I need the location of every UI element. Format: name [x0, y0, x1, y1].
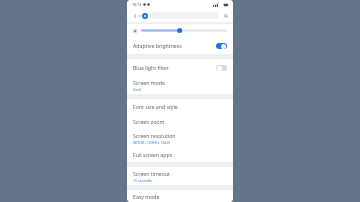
button[interactable]: Display settings — [142, 13, 148, 19]
staticText: WQHD+ (3088 x 1440) — [133, 140, 170, 145]
staticText: 10:13 — [132, 2, 142, 7]
button[interactable]: Brightness — [141, 27, 227, 34]
button[interactable]: Screen timeout — [127, 167, 233, 185]
staticText: Vivid — [133, 87, 142, 92]
button[interactable]: Adaptive brightness — [127, 37, 233, 54]
button[interactable]: Font size and style — [127, 99, 233, 114]
staticText: Screen timeout — [133, 170, 170, 177]
button[interactable]: Back — [131, 12, 138, 19]
button[interactable]: Search — [222, 12, 229, 19]
button[interactable]: Screen resolution — [127, 129, 233, 147]
staticText: Blue light filter — [133, 64, 213, 71]
button[interactable]: Blue light filter — [216, 65, 227, 71]
staticText: Screen mode — [133, 79, 165, 86]
staticText: Screen resolution — [133, 132, 176, 139]
staticText: Adaptive brightness — [133, 42, 213, 49]
staticText: Font size and style — [133, 103, 178, 110]
button[interactable]: Full screen apps — [127, 147, 233, 162]
button[interactable]: Easy mode — [127, 190, 233, 202]
button[interactable]: Blue light filter — [127, 59, 233, 76]
staticText: Screen zoom — [133, 118, 165, 125]
staticText: Full screen apps — [133, 151, 173, 158]
button[interactable]: Screen zoom — [127, 114, 233, 129]
button[interactable]: Adaptive brightness — [216, 43, 227, 49]
staticText: 15 seconds — [133, 178, 152, 183]
staticText: Easy mode — [133, 193, 160, 200]
button[interactable]: Screen mode — [127, 76, 233, 94]
